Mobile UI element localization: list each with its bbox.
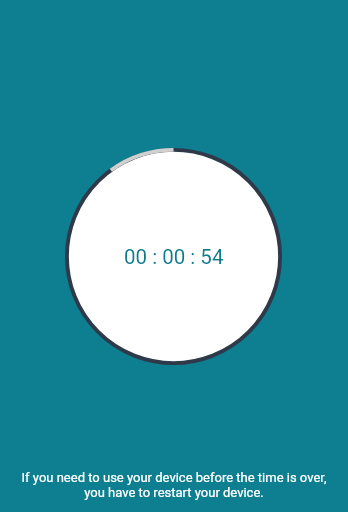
staticText: 00 : 00 : 54 [124, 245, 224, 269]
staticText: If you need to use your device before th… [3, 470, 345, 500]
button[interactable]: Countdown timer, 54 seconds remaining [65, 148, 282, 365]
